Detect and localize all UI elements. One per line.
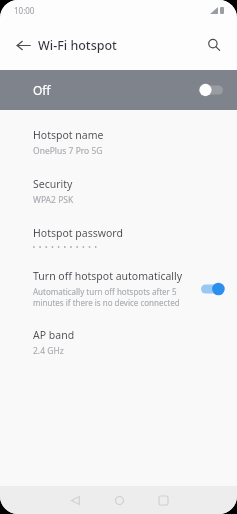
button[interactable]: Security — [0, 167, 237, 216]
staticText: Turn off hotspot automatically — [33, 269, 183, 283]
staticText: Hotspot name — [33, 128, 104, 142]
staticText: 2.4 GHz — [33, 345, 64, 357]
button[interactable]: Off — [0, 70, 237, 110]
button[interactable]: Hotspot password — [0, 216, 237, 259]
button[interactable]: Back — [6, 28, 40, 62]
button[interactable]: AP band — [0, 318, 237, 367]
staticText: AP band — [33, 328, 75, 342]
staticText: OnePlus 7 Pro 5G — [33, 145, 103, 157]
button[interactable]: Turn off hotspot automatically toggle — [201, 282, 225, 296]
staticText: Automatically turn off hotspots after 5 … — [33, 286, 193, 308]
button[interactable]: Hotspot name — [0, 118, 237, 167]
button[interactable]: Back — [53, 486, 97, 514]
button[interactable]: Home — [97, 486, 141, 514]
button[interactable]: Search — [197, 28, 231, 62]
button[interactable]: Turn off hotspot automatically — [0, 259, 237, 318]
staticText: Off — [33, 82, 51, 98]
staticText: 10:00 — [14, 5, 35, 16]
staticText: Security — [33, 177, 73, 191]
staticText: Wi-Fi hotspot — [38, 37, 117, 54]
button[interactable]: Recent apps — [141, 486, 185, 514]
staticText: WPA2 PSK — [33, 194, 74, 206]
staticText: Hotspot password — [33, 226, 123, 240]
